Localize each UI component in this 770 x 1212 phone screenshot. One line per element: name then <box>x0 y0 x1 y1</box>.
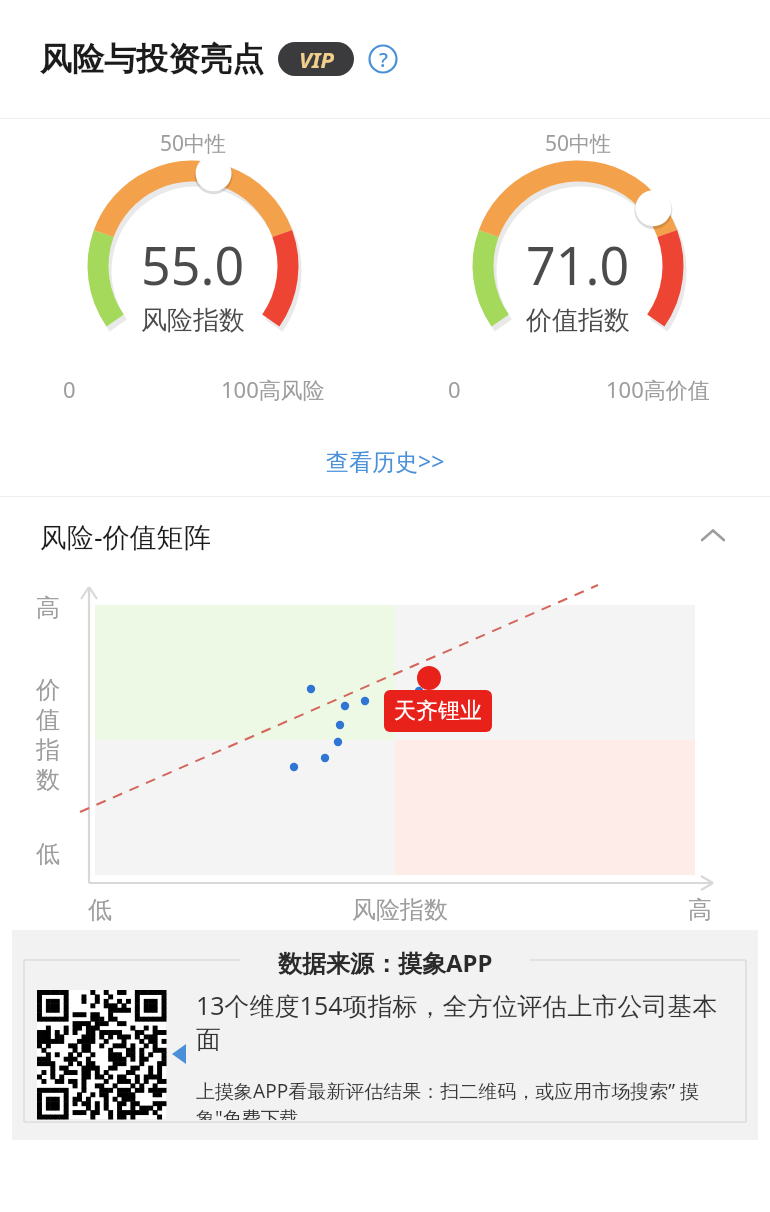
staticText: 50中性 <box>160 129 227 158</box>
button[interactable]: Help <box>366 42 400 76</box>
button[interactable]: 天齐锂业 <box>384 690 492 732</box>
staticText: 0 <box>63 374 76 404</box>
staticText: ? <box>379 46 388 73</box>
staticText: 查看历史>> <box>326 445 445 476</box>
staticText: 价值指数 <box>526 304 630 337</box>
staticText: 指 <box>36 735 60 765</box>
staticText: 数 <box>36 765 60 795</box>
staticText: 风险指数 <box>352 895 448 925</box>
staticText: 上摸象APP看最新评估结果：扫二维码，或应用市场搜索” 摸象"免费下载 <box>196 1078 736 1120</box>
other: Collapse <box>696 519 730 553</box>
staticText: 100高价值 <box>606 374 710 404</box>
staticText: 风险指数 <box>141 304 245 337</box>
staticText: 值 <box>36 705 60 735</box>
staticText: 天齐锂业 <box>394 697 482 725</box>
staticText: 100高风险 <box>221 374 325 404</box>
staticText: 风险-价值矩阵 <box>40 518 211 555</box>
staticText: 0 <box>448 374 461 404</box>
staticText: 价 <box>36 675 60 705</box>
button[interactable]: 查看历史>> <box>0 424 770 496</box>
staticText: 风险与投资亮点 <box>40 39 264 79</box>
staticText: 低 <box>36 839 60 869</box>
staticText: 71.0 <box>526 229 630 300</box>
button[interactable]: VIP <box>278 42 354 76</box>
staticText: VIP <box>299 44 334 74</box>
staticText: 低 <box>88 895 112 925</box>
other: Pointer <box>172 1044 186 1064</box>
button[interactable]: 风险-价值矩阵 <box>40 497 730 575</box>
staticText: 55.0 <box>141 229 245 300</box>
staticText: 数据来源：摸象APP <box>278 946 493 979</box>
staticText: 50中性 <box>545 129 612 158</box>
staticText: 高 <box>688 895 712 925</box>
staticText: 13个维度154项指标，全方位评估上市公司基本面 <box>196 988 736 1056</box>
staticText: 高 <box>36 593 60 623</box>
